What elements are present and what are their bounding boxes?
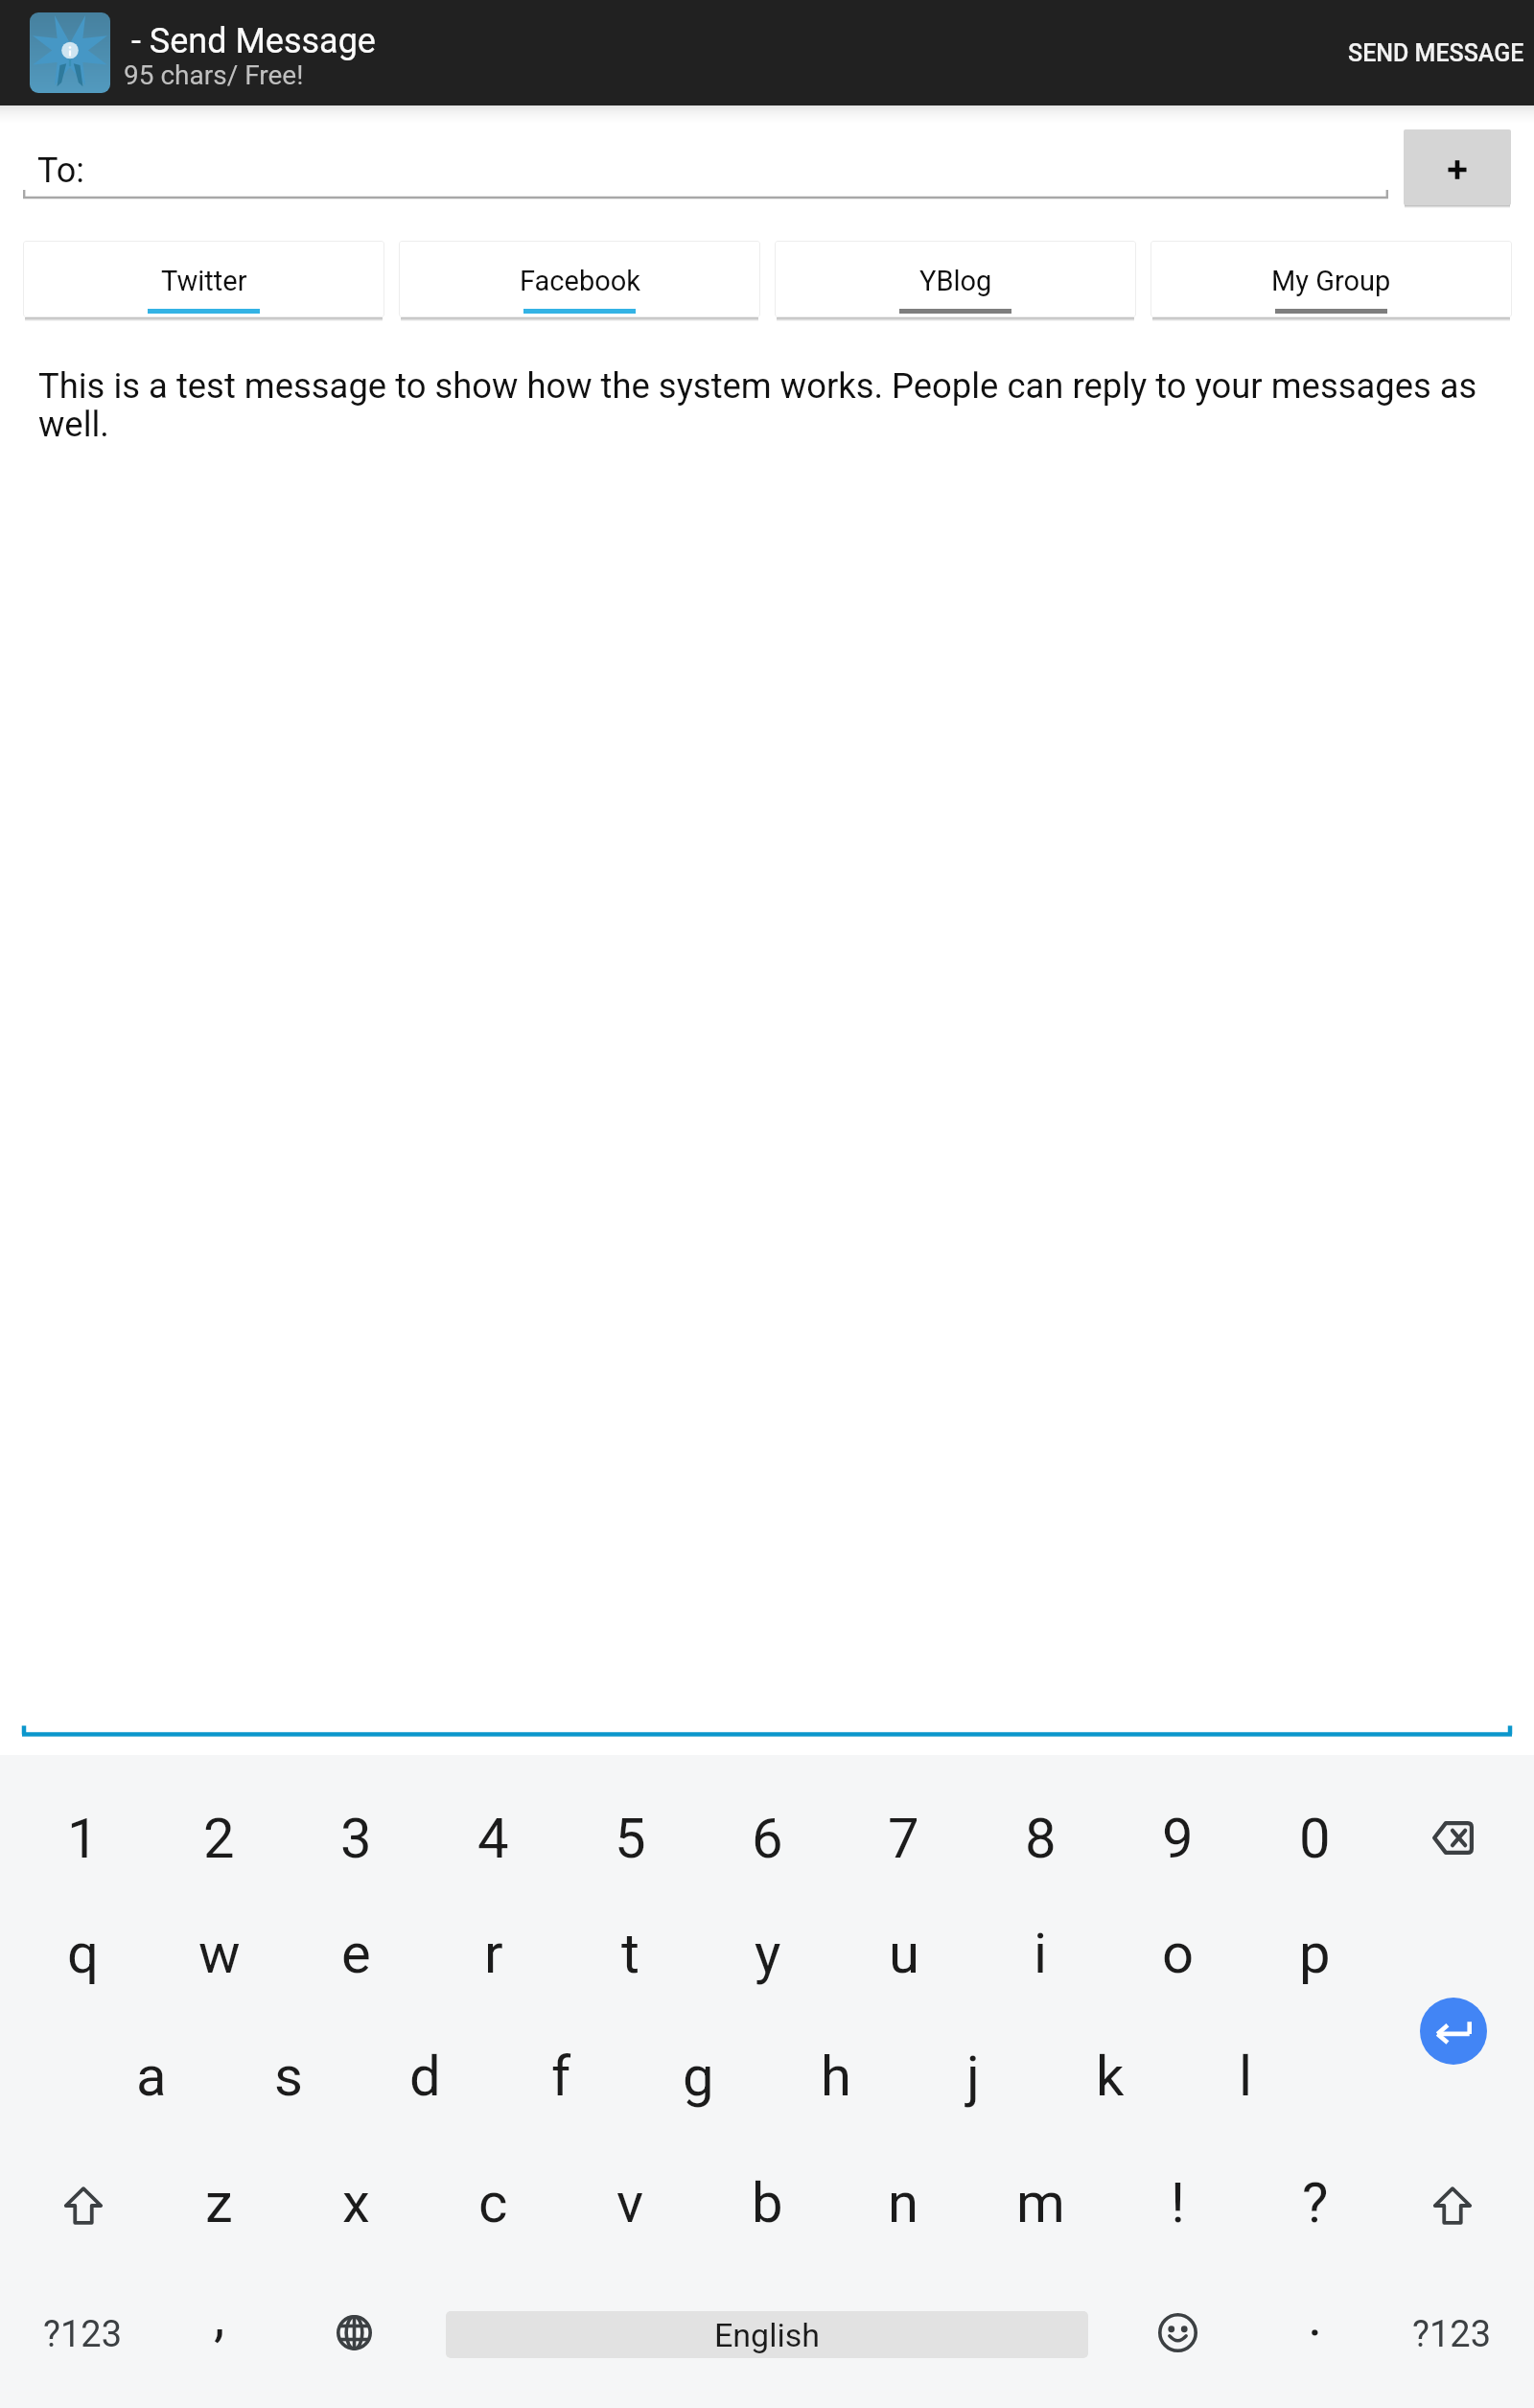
button[interactable]: 4 bbox=[425, 1775, 562, 1901]
button[interactable]: App home bbox=[30, 12, 110, 93]
button[interactable]: Backspace bbox=[1383, 1775, 1521, 1901]
staticText: b bbox=[752, 2170, 783, 2235]
button[interactable]: n bbox=[835, 2139, 972, 2265]
button[interactable]: u bbox=[835, 1890, 972, 2016]
button[interactable]: o bbox=[1109, 1890, 1246, 2016]
staticText: n bbox=[888, 2170, 919, 2235]
button[interactable]: d bbox=[357, 2013, 494, 2139]
button[interactable]: w bbox=[151, 1890, 288, 2016]
button[interactable]: 2 bbox=[151, 1775, 288, 1901]
button[interactable]: 9 bbox=[1109, 1775, 1246, 1901]
staticText: ! bbox=[1171, 2170, 1185, 2235]
staticText: i bbox=[1034, 1921, 1048, 1986]
button[interactable]: r bbox=[425, 1890, 562, 2016]
button[interactable]: Enter bbox=[1420, 1998, 1487, 2065]
staticText: c bbox=[478, 2170, 508, 2235]
button[interactable]: 8 bbox=[972, 1775, 1109, 1901]
staticText: 2 bbox=[203, 1806, 235, 1871]
staticText: f bbox=[551, 2044, 571, 2109]
button[interactable]: e bbox=[288, 1890, 425, 2016]
button[interactable]: 3 bbox=[288, 1775, 425, 1901]
staticText: w bbox=[198, 1921, 241, 1986]
button[interactable]: x bbox=[288, 2139, 425, 2265]
button[interactable]: i bbox=[972, 1890, 1109, 2016]
button[interactable]: ! bbox=[1109, 2139, 1246, 2265]
staticText: 6 bbox=[752, 1806, 783, 1871]
staticText: 5 bbox=[615, 1806, 646, 1871]
button[interactable]: Shift bbox=[1383, 2139, 1521, 2265]
button[interactable]: f bbox=[493, 2013, 630, 2139]
staticText: l bbox=[1239, 2044, 1253, 2109]
staticText: Twitter bbox=[161, 265, 247, 297]
button[interactable]: h bbox=[767, 2013, 904, 2139]
button[interactable]: , bbox=[151, 2272, 288, 2397]
button[interactable]: 0 bbox=[1246, 1775, 1383, 1901]
button[interactable]: Add recipient bbox=[1404, 129, 1511, 205]
staticText: s bbox=[274, 2044, 303, 2109]
button[interactable]: l bbox=[1177, 2013, 1314, 2139]
staticText: m bbox=[1016, 2170, 1065, 2235]
staticText: . bbox=[1308, 2283, 1323, 2349]
button[interactable]: SEND MESSAGE bbox=[1331, 16, 1534, 89]
staticText: u bbox=[889, 1921, 919, 1986]
staticText: h bbox=[821, 2044, 851, 2109]
staticText: q bbox=[67, 1921, 99, 1986]
staticText: d bbox=[409, 2044, 441, 2109]
staticText: j bbox=[966, 2044, 980, 2109]
button[interactable]: English bbox=[446, 2311, 1088, 2358]
button[interactable]: This is a test message to show how the s… bbox=[0, 326, 1534, 1736]
staticText: 4 bbox=[477, 1806, 509, 1871]
staticText: Facebook bbox=[520, 265, 640, 297]
staticText: x bbox=[342, 2170, 370, 2235]
button[interactable]: . bbox=[1246, 2272, 1383, 2397]
staticText: YBlog bbox=[919, 265, 992, 297]
staticText: r bbox=[484, 1921, 503, 1986]
button[interactable]: My Group bbox=[1150, 241, 1512, 317]
staticText: English bbox=[714, 2316, 821, 2354]
staticText: p bbox=[1299, 1921, 1331, 1986]
staticText: ? bbox=[1302, 2170, 1329, 2235]
staticText: 8 bbox=[1025, 1806, 1057, 1871]
staticText: z bbox=[205, 2170, 233, 2235]
button[interactable]: b bbox=[699, 2139, 836, 2265]
button[interactable]: g bbox=[630, 2013, 767, 2139]
button[interactable]: v bbox=[562, 2139, 699, 2265]
button[interactable]: p bbox=[1246, 1890, 1383, 2016]
button[interactable]: a bbox=[82, 2013, 220, 2139]
staticText: a bbox=[136, 2044, 167, 2109]
button[interactable]: 5 bbox=[562, 1775, 699, 1901]
staticText: 95 chars/ Free! bbox=[124, 59, 304, 91]
button[interactable]: t bbox=[562, 1890, 699, 2016]
button[interactable]: Facebook bbox=[399, 241, 760, 317]
staticText: 1 bbox=[67, 1806, 99, 1871]
staticText: v bbox=[616, 2170, 644, 2235]
button[interactable]: ? bbox=[1246, 2139, 1383, 2265]
staticText: To: bbox=[37, 151, 84, 191]
staticText: t bbox=[621, 1921, 639, 1986]
button[interactable]: q bbox=[14, 1890, 151, 2016]
button[interactable]: z bbox=[151, 2139, 288, 2265]
button[interactable]: s bbox=[220, 2013, 357, 2139]
button[interactable]: k bbox=[1041, 2013, 1178, 2139]
button[interactable]: m bbox=[972, 2139, 1109, 2265]
button[interactable]: Emoji bbox=[1109, 2272, 1246, 2397]
staticText: My Group bbox=[1271, 265, 1391, 297]
button[interactable]: YBlog bbox=[775, 241, 1136, 317]
button[interactable]: ?123 bbox=[14, 2272, 151, 2397]
staticText: , bbox=[214, 2283, 225, 2349]
button[interactable]: 7 bbox=[835, 1775, 972, 1901]
button[interactable]: Twitter bbox=[23, 241, 384, 317]
staticText: y bbox=[755, 1921, 781, 1986]
staticText: SEND MESSAGE bbox=[1348, 39, 1524, 67]
button[interactable]: ?123 bbox=[1383, 2272, 1521, 2397]
button[interactable]: Shift bbox=[14, 2139, 151, 2265]
staticText: This is a test message to show how the s… bbox=[38, 365, 1505, 445]
button[interactable]: 6 bbox=[699, 1775, 836, 1901]
button[interactable]: j bbox=[904, 2013, 1041, 2139]
button[interactable]: Change language bbox=[288, 2272, 425, 2397]
button[interactable]: y bbox=[699, 1890, 836, 2016]
staticText: 9 bbox=[1162, 1806, 1194, 1871]
staticText: g bbox=[683, 2044, 714, 2109]
button[interactable]: c bbox=[425, 2139, 562, 2265]
button[interactable]: 1 bbox=[14, 1775, 151, 1901]
